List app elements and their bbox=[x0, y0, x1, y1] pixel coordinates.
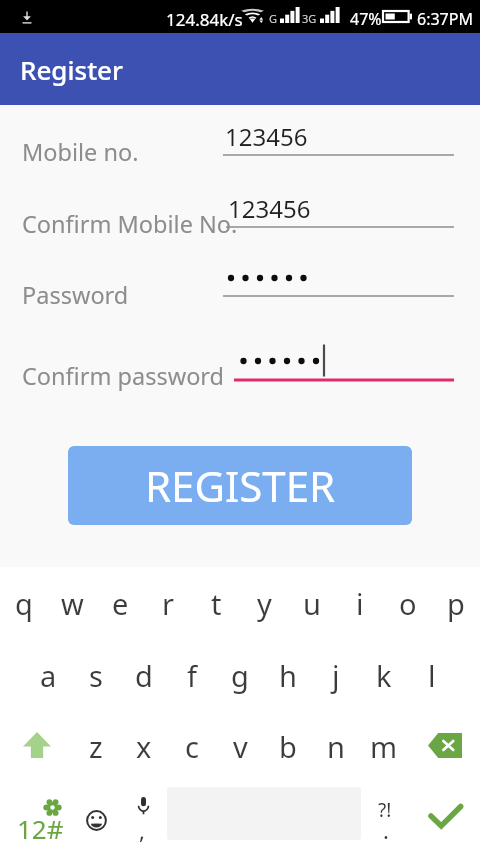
staticText: z bbox=[89, 727, 103, 766]
button[interactable]: a bbox=[24, 647, 72, 703]
staticText: q bbox=[15, 584, 33, 623]
button[interactable]: c bbox=[168, 718, 216, 774]
staticText: 124.84k/s bbox=[166, 8, 243, 31]
staticText: f bbox=[187, 656, 197, 695]
button[interactable]: Confirm password bbox=[0, 338, 480, 394]
button[interactable]: Password bbox=[0, 257, 480, 313]
button[interactable]: b bbox=[264, 718, 312, 774]
button[interactable]: v bbox=[216, 718, 264, 774]
button[interactable]: Confirm Mobile No. bbox=[0, 186, 480, 242]
staticText: l bbox=[428, 656, 436, 695]
staticText: d bbox=[135, 656, 153, 695]
button[interactable]: Voice input bbox=[122, 792, 166, 844]
button[interactable]: i bbox=[336, 575, 384, 631]
button[interactable]: Emoji bbox=[76, 800, 116, 840]
staticText: 6:37PM bbox=[417, 8, 473, 30]
staticText: c bbox=[185, 727, 199, 766]
staticText: i bbox=[356, 584, 364, 623]
staticText: n bbox=[327, 727, 345, 766]
staticText: u bbox=[303, 584, 321, 623]
staticText: G bbox=[269, 11, 278, 26]
staticText: Confirm password bbox=[22, 360, 225, 392]
staticText: Confirm Mobile No. bbox=[22, 208, 238, 240]
staticText: 123456 bbox=[225, 120, 308, 153]
staticText: , bbox=[139, 815, 145, 845]
staticText: w bbox=[61, 584, 84, 623]
button[interactable]: t bbox=[192, 575, 240, 631]
button[interactable]: j bbox=[312, 647, 360, 703]
staticText: g bbox=[231, 656, 249, 695]
staticText: 123456 bbox=[228, 192, 311, 225]
staticText: s bbox=[89, 656, 103, 695]
button[interactable]: u bbox=[288, 575, 336, 631]
staticText: v bbox=[233, 727, 248, 766]
button[interactable]: m bbox=[360, 718, 408, 774]
staticText: m bbox=[370, 727, 398, 766]
staticText: k bbox=[376, 656, 392, 695]
button[interactable]: Mobile no. bbox=[0, 114, 480, 170]
button[interactable]: z bbox=[72, 718, 120, 774]
button[interactable]: REGISTER bbox=[68, 446, 412, 525]
staticText: ?! bbox=[378, 797, 392, 823]
button[interactable]: Punctuation bbox=[366, 792, 408, 844]
staticText: Register bbox=[20, 52, 124, 87]
staticText: 3G bbox=[302, 11, 317, 26]
button[interactable]: s bbox=[72, 647, 120, 703]
button[interactable]: w bbox=[48, 575, 96, 631]
staticText: r bbox=[162, 584, 174, 623]
button[interactable]: f bbox=[168, 647, 216, 703]
staticText: p bbox=[447, 584, 465, 623]
staticText: o bbox=[399, 584, 417, 623]
button[interactable]: x bbox=[120, 718, 168, 774]
staticText: Password bbox=[22, 279, 129, 311]
staticText: j bbox=[332, 656, 340, 695]
button[interactable]: o bbox=[384, 575, 432, 631]
button[interactable]: Symbols bbox=[4, 792, 72, 848]
staticText: 47% bbox=[350, 8, 382, 30]
staticText: Mobile no. bbox=[22, 136, 139, 168]
staticText: t bbox=[211, 584, 222, 623]
staticText: b bbox=[279, 727, 297, 766]
staticText: . bbox=[383, 815, 389, 845]
staticText: 12# bbox=[17, 811, 64, 846]
staticText: REGISTER bbox=[145, 457, 336, 514]
button[interactable]: d bbox=[120, 647, 168, 703]
button[interactable]: r bbox=[144, 575, 192, 631]
staticText: x bbox=[136, 727, 152, 766]
button[interactable]: Shift bbox=[10, 722, 64, 768]
button[interactable]: y bbox=[240, 575, 288, 631]
button[interactable]: q bbox=[0, 575, 48, 631]
button[interactable]: g bbox=[216, 647, 264, 703]
staticText: e bbox=[112, 584, 129, 623]
button[interactable]: h bbox=[264, 647, 312, 703]
button[interactable]: e bbox=[96, 575, 144, 631]
staticText: a bbox=[40, 656, 57, 695]
button[interactable]: Backspace bbox=[420, 722, 470, 768]
button[interactable]: Enter bbox=[414, 793, 476, 839]
button[interactable]: l bbox=[408, 647, 456, 703]
staticText: y bbox=[257, 584, 272, 623]
staticText: h bbox=[279, 656, 297, 695]
button[interactable]: n bbox=[312, 718, 360, 774]
button[interactable]: p bbox=[432, 575, 480, 631]
button[interactable]: k bbox=[360, 647, 408, 703]
